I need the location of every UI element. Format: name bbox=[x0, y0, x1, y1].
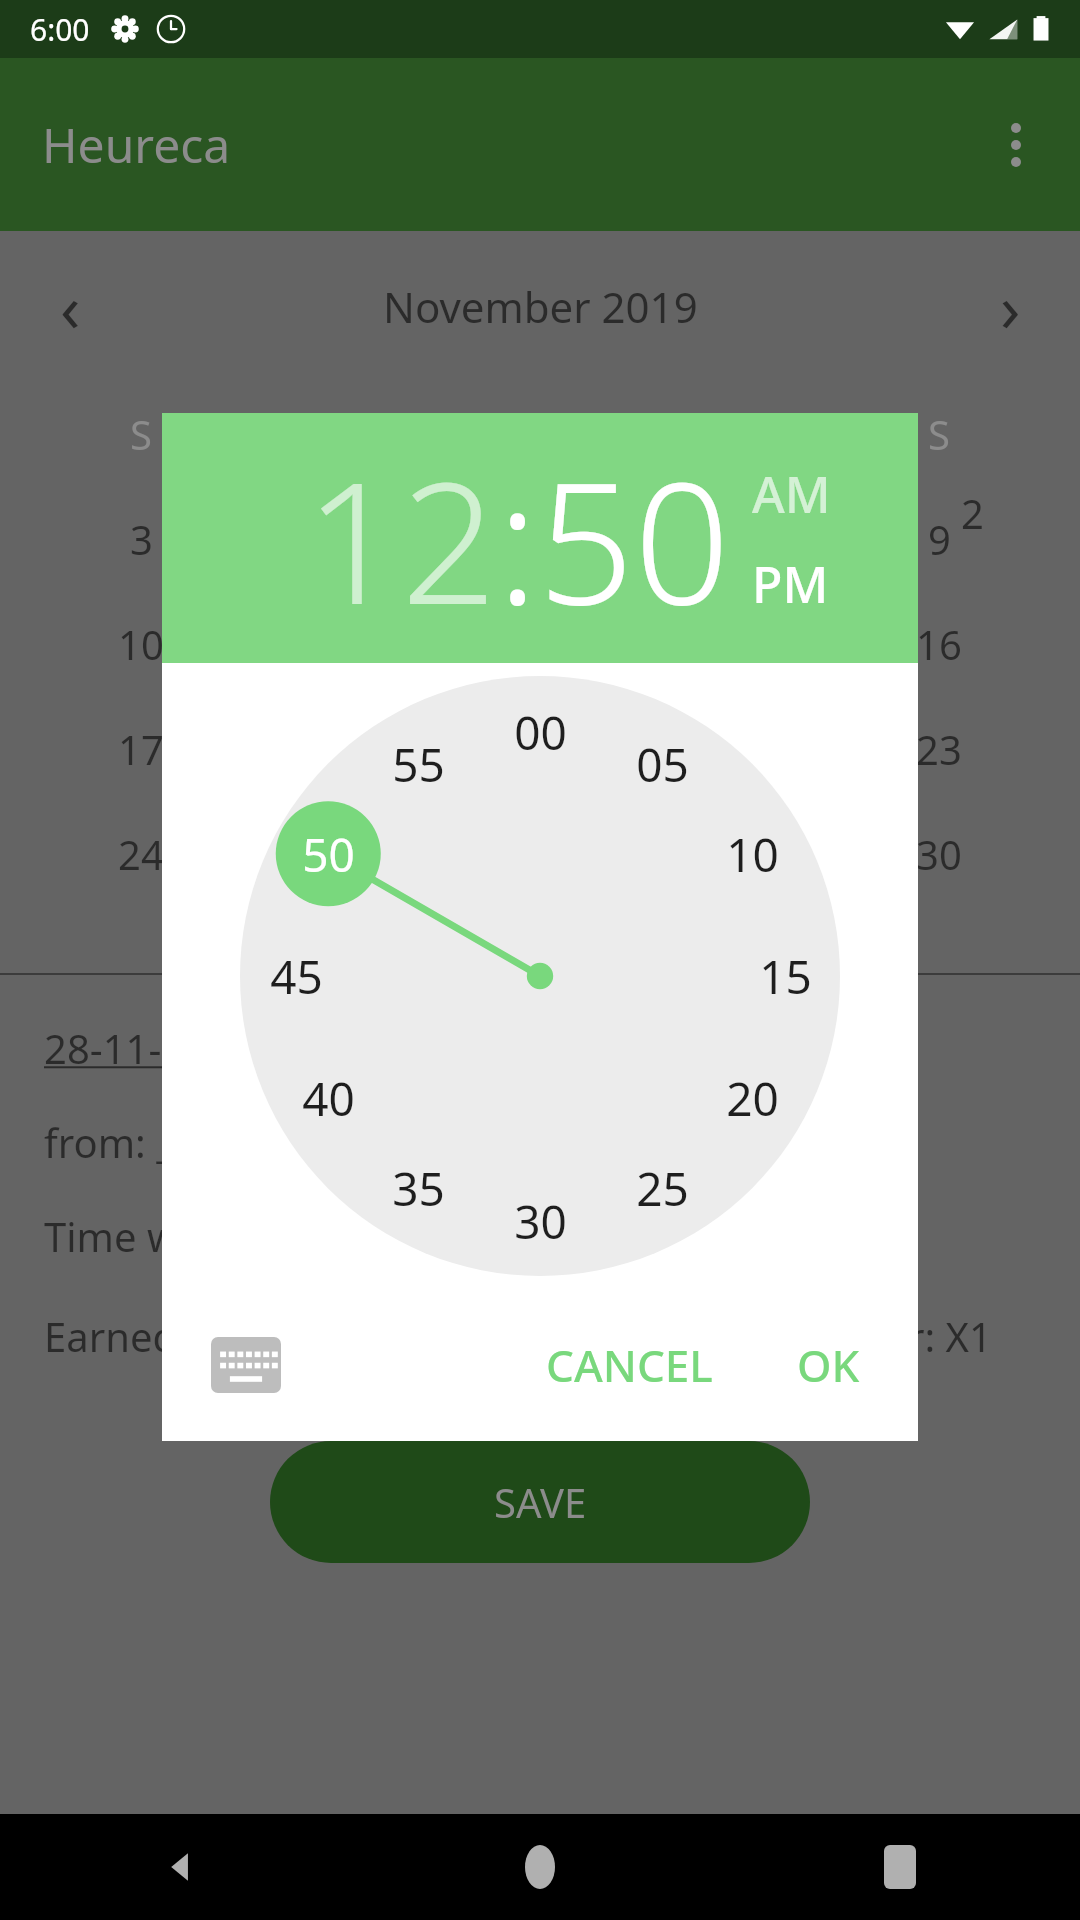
staticText: CANCEL bbox=[546, 1335, 713, 1395]
staticText: › bbox=[1000, 261, 1021, 351]
staticText: 25 bbox=[636, 1157, 689, 1220]
button[interactable]: Back bbox=[0, 1814, 360, 1920]
staticText: 10 bbox=[118, 617, 164, 671]
button[interactable]: Home bbox=[360, 1814, 720, 1920]
staticText: 55 bbox=[392, 733, 445, 796]
staticText: Time worked: bbox=[44, 1209, 299, 1263]
button[interactable]: 55 bbox=[370, 716, 466, 812]
staticText: Multiplier: X1 bbox=[744, 1309, 992, 1363]
staticText: 24 bbox=[118, 827, 164, 881]
staticText: 05 bbox=[636, 733, 689, 796]
staticText: 30 bbox=[514, 1190, 567, 1253]
staticText: ‹ bbox=[60, 261, 81, 351]
button[interactable]: S bbox=[894, 381, 984, 486]
staticText: from: ______ bbox=[44, 1115, 263, 1169]
staticText: 6:00 bbox=[30, 9, 90, 50]
button[interactable]: 05 bbox=[614, 716, 710, 812]
staticText: 3 bbox=[130, 512, 153, 566]
button[interactable]: 35 bbox=[370, 1140, 466, 1236]
staticText: 20 bbox=[726, 1067, 779, 1130]
button[interactable]: 16 bbox=[894, 591, 984, 696]
staticText: OK bbox=[797, 1335, 860, 1395]
staticText: 12 bbox=[305, 424, 497, 653]
button[interactable]: 17 bbox=[96, 696, 186, 801]
button[interactable]: More options bbox=[980, 109, 1052, 181]
button[interactable]: S bbox=[96, 381, 186, 486]
button[interactable]: 45 bbox=[248, 928, 344, 1024]
staticText: PM bbox=[752, 550, 829, 618]
button[interactable]: OK bbox=[775, 1317, 882, 1413]
button[interactable]: Recent apps bbox=[720, 1814, 1080, 1920]
staticText: 28-11-19 bbox=[44, 1021, 208, 1075]
staticText: 40 bbox=[302, 1067, 355, 1130]
button[interactable]: 20 bbox=[704, 1050, 800, 1146]
staticText: 23 bbox=[916, 722, 962, 776]
staticText: November 2019 bbox=[383, 278, 698, 335]
button[interactable]: Switch to keyboard input bbox=[204, 1323, 288, 1407]
staticText: 15 bbox=[759, 945, 812, 1008]
button[interactable]: 15 bbox=[737, 928, 833, 1024]
staticText: SAVE bbox=[494, 1475, 587, 1529]
button[interactable]: 30 bbox=[894, 801, 984, 906]
button[interactable]: 30 bbox=[492, 1173, 588, 1269]
staticText: 10 bbox=[726, 823, 779, 886]
staticText: 30 bbox=[916, 827, 962, 881]
staticText: 9 bbox=[928, 512, 951, 566]
button[interactable]: PM bbox=[752, 550, 829, 618]
staticText: Heureca bbox=[42, 112, 231, 177]
button[interactable]: 9 bbox=[894, 486, 984, 591]
button[interactable]: 23 bbox=[894, 696, 984, 801]
button[interactable]: SAVE bbox=[270, 1441, 810, 1563]
button[interactable]: 40 bbox=[280, 1050, 376, 1146]
button[interactable]: 25 bbox=[614, 1140, 710, 1236]
button[interactable]: 10 bbox=[704, 806, 800, 902]
button[interactable]: 3 bbox=[96, 486, 186, 591]
button[interactable]: 50 bbox=[538, 424, 730, 653]
button[interactable]: 50 bbox=[280, 806, 376, 902]
staticText: 50 bbox=[302, 823, 355, 886]
button[interactable]: 00 bbox=[492, 684, 588, 780]
staticText: 35 bbox=[392, 1157, 445, 1220]
button[interactable]: 24 bbox=[96, 801, 186, 906]
staticText: S bbox=[130, 407, 152, 461]
staticText: 17 bbox=[118, 722, 164, 776]
staticText: AM bbox=[752, 460, 831, 528]
button[interactable]: 10 bbox=[96, 591, 186, 696]
staticText: 00 bbox=[514, 701, 567, 764]
staticText: S bbox=[928, 407, 950, 461]
staticText: 45 bbox=[270, 945, 323, 1008]
staticText: : bbox=[497, 424, 538, 653]
staticText: Earned today: bbox=[44, 1309, 305, 1363]
button[interactable]: Next month bbox=[940, 246, 1080, 366]
staticText: 50 bbox=[538, 424, 730, 653]
button[interactable]: CANCEL bbox=[524, 1317, 735, 1413]
button[interactable]: AM bbox=[752, 460, 831, 528]
staticText: 16 bbox=[916, 617, 962, 671]
staticText: 2 bbox=[961, 486, 984, 540]
button[interactable]: 12 bbox=[305, 424, 497, 653]
button[interactable]: Previous month bbox=[0, 246, 140, 366]
